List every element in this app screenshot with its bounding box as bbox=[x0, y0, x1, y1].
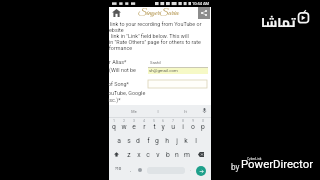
button[interactable] bbox=[109, 118, 119, 130]
button[interactable] bbox=[144, 147, 154, 159]
staticText: y bbox=[161, 123, 165, 131]
staticText: , bbox=[130, 167, 131, 172]
button[interactable] bbox=[188, 118, 198, 130]
staticText: t bbox=[153, 123, 156, 131]
staticText: w bbox=[121, 123, 127, 131]
button[interactable] bbox=[172, 133, 182, 145]
button[interactable] bbox=[162, 133, 172, 145]
staticText: PowerDirector bbox=[241, 157, 314, 170]
staticText: h bbox=[165, 137, 169, 145]
button[interactable]: Shift bbox=[111, 149, 121, 160]
staticText: It bbox=[184, 109, 187, 113]
button[interactable]: Share bbox=[198, 7, 210, 19]
button[interactable] bbox=[143, 133, 153, 145]
staticText: r Alias* bbox=[109, 59, 127, 65]
button[interactable] bbox=[114, 133, 124, 145]
staticText: formance bbox=[109, 45, 133, 51]
staticText: s bbox=[127, 137, 131, 145]
button[interactable]: Enter bbox=[196, 166, 206, 176]
button[interactable]: Backspace bbox=[195, 149, 206, 160]
button[interactable] bbox=[168, 118, 178, 130]
button[interactable]: Change keyboard language bbox=[136, 164, 144, 176]
button[interactable] bbox=[191, 133, 201, 145]
staticText: by bbox=[231, 162, 240, 172]
staticText: تماشا bbox=[261, 10, 296, 34]
staticText: CyberLink bbox=[247, 157, 262, 161]
staticText: link to your recording from YouTube or bbox=[110, 21, 202, 27]
button[interactable]: ?1O bbox=[112, 164, 124, 176]
staticText: . bbox=[190, 167, 192, 172]
button[interactable] bbox=[149, 118, 159, 130]
button[interactable]: , bbox=[126, 164, 134, 176]
staticText: d bbox=[136, 137, 140, 145]
staticText: of Song* bbox=[108, 81, 129, 87]
staticText: I bbox=[157, 109, 159, 113]
staticText: Saahil bbox=[150, 60, 161, 65]
staticText: 7 bbox=[172, 119, 174, 122]
staticText: e bbox=[132, 123, 136, 131]
button[interactable] bbox=[153, 133, 163, 145]
staticText: k bbox=[184, 137, 188, 145]
staticText: 6 bbox=[162, 119, 164, 122]
staticText: l bbox=[195, 137, 197, 145]
button[interactable] bbox=[124, 133, 134, 145]
button[interactable] bbox=[124, 147, 134, 159]
button[interactable] bbox=[159, 118, 169, 130]
staticText: q bbox=[112, 123, 116, 131]
staticText: b bbox=[166, 151, 170, 159]
button[interactable] bbox=[173, 147, 183, 159]
staticText: x bbox=[137, 151, 141, 159]
staticText: sh@gmail.com bbox=[149, 68, 178, 73]
button[interactable]: Home bbox=[110, 7, 122, 19]
staticText: link in "Link" field below. This will bbox=[111, 33, 189, 39]
button[interactable] bbox=[148, 68, 208, 74]
button[interactable] bbox=[134, 147, 144, 159]
staticText: n bbox=[175, 151, 179, 159]
staticText: a bbox=[117, 137, 121, 145]
button[interactable] bbox=[182, 147, 192, 159]
staticText: z bbox=[127, 151, 131, 159]
button[interactable] bbox=[139, 118, 149, 130]
button[interactable] bbox=[153, 147, 163, 159]
staticText: 10:54 AM bbox=[192, 1, 210, 6]
button[interactable] bbox=[129, 118, 139, 130]
button[interactable] bbox=[178, 118, 188, 130]
staticText: j bbox=[176, 137, 178, 145]
button[interactable]: Voice input bbox=[198, 105, 210, 116]
staticText: i bbox=[182, 123, 184, 131]
staticText: c bbox=[146, 151, 150, 159]
staticText: Me bbox=[131, 109, 137, 113]
staticText: 9 bbox=[192, 119, 194, 122]
staticText: SingerSaria bbox=[138, 7, 179, 18]
staticText: m bbox=[184, 151, 190, 159]
button[interactable] bbox=[148, 80, 207, 88]
staticText: r bbox=[143, 123, 146, 131]
staticText: in "Rate Others" page for others to rate bbox=[109, 39, 201, 45]
staticText: isc.)* bbox=[108, 97, 121, 103]
staticText: v bbox=[156, 151, 160, 159]
staticText: 5 bbox=[153, 119, 155, 122]
staticText: ?1O bbox=[115, 167, 122, 171]
button[interactable] bbox=[134, 133, 144, 145]
staticText: ebsite bbox=[109, 27, 124, 33]
staticText: p bbox=[201, 123, 205, 131]
staticText: 2 bbox=[123, 119, 125, 122]
staticText: o bbox=[191, 123, 195, 131]
button[interactable] bbox=[198, 118, 208, 130]
staticText: 3 bbox=[133, 119, 135, 122]
button[interactable] bbox=[163, 147, 173, 159]
staticText: g bbox=[155, 137, 159, 145]
staticText: f bbox=[147, 137, 150, 145]
staticText: 4 bbox=[143, 119, 145, 122]
staticText: (Will not be bbox=[109, 67, 136, 73]
staticText: 1 bbox=[113, 119, 115, 122]
button[interactable] bbox=[181, 133, 191, 145]
staticText: u bbox=[171, 123, 175, 131]
staticText: ouTube, Google bbox=[108, 90, 146, 96]
button[interactable] bbox=[119, 118, 129, 130]
